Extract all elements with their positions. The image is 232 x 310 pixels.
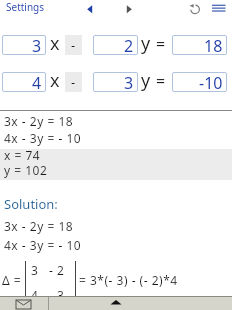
staticText: - 2 [49,262,65,278]
staticText: x = 74 [4,147,41,163]
staticText: Δ = [2,272,22,288]
button[interactable] [0,164,232,180]
button[interactable]: Settings [0,0,70,18]
button[interactable] [209,0,229,18]
staticText: 3x - 2y = 18 [4,218,74,234]
button[interactable] [96,296,136,310]
button[interactable] [120,0,140,18]
button[interactable]: 2 [93,35,138,55]
staticText: 3 [124,72,134,92]
staticText: y [141,68,151,93]
button[interactable] [0,296,48,310]
staticText: 3x - 2y = 18 [4,113,74,129]
button[interactable]: 4 [2,72,46,92]
staticText: 3 [31,262,39,278]
staticText: = [156,70,166,92]
staticText: 2 [124,35,134,55]
button[interactable] [80,0,100,18]
staticText: 4x - 3y = - 10 [4,237,82,253]
staticText: Settings [6,0,45,14]
staticText: - 3 [49,287,65,303]
button[interactable]: 3 [93,72,138,92]
staticText: 4 [31,287,39,303]
staticText: - [71,36,76,54]
staticText: 4 [32,72,42,92]
staticText: - [71,73,76,91]
staticText: y = 102 [4,162,48,178]
staticText: = 3*(- 3) - (- 2)*4 [79,272,178,288]
staticText: x [50,68,61,93]
staticText: = [156,33,166,55]
staticText: y [141,31,151,56]
staticText: 18 [204,35,223,55]
staticText: 4x - 3y = - 10 [4,130,82,146]
button[interactable]: - [65,72,82,92]
button[interactable]: 18 [172,35,227,55]
button[interactable] [0,149,232,164]
staticText: x [50,31,61,56]
staticText: 3 [32,35,42,55]
button[interactable] [187,0,205,18]
staticText: -10 [199,72,223,92]
button[interactable]: -10 [172,72,227,92]
staticText: Solution: [4,195,58,213]
button[interactable]: 3 [2,35,46,55]
button[interactable]: - [65,35,82,55]
